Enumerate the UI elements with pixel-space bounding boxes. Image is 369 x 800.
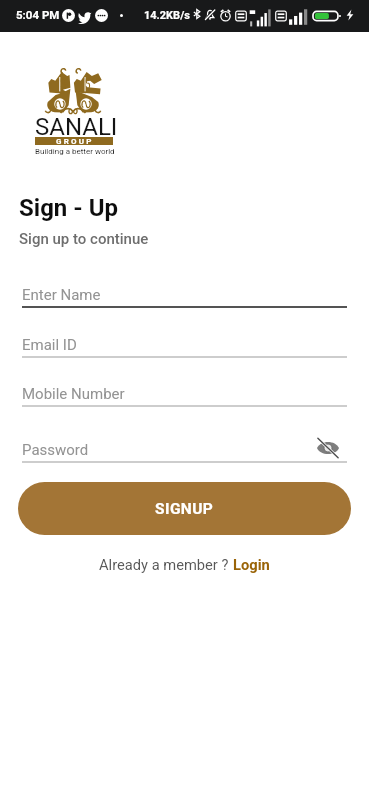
- button[interactable]: Toggle password visibility: [315, 435, 341, 461]
- staticText: Building a better world: [35, 147, 115, 156]
- staticText: 14.2KB/s: [144, 9, 190, 22]
- staticText: Login: [233, 556, 270, 573]
- staticText: Already a member ?: [99, 556, 233, 573]
- staticText: Password: [22, 441, 89, 459]
- staticText: GROUP: [56, 137, 94, 145]
- button[interactable]: Login: [233, 556, 270, 573]
- staticText: 5:04 PM: [16, 8, 60, 21]
- button[interactable]: SIGNUP: [18, 482, 351, 535]
- staticText: Mobile Number: [22, 385, 125, 403]
- staticText: Email ID: [22, 336, 77, 354]
- staticText: Sign up to continue: [19, 230, 149, 248]
- staticText: Enter Name: [22, 286, 101, 304]
- staticText: SIGNUP: [155, 500, 214, 518]
- staticText: Sign - Up: [19, 194, 118, 222]
- staticText: SANALI: [35, 113, 118, 141]
